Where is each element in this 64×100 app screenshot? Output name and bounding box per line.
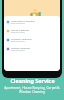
- staticText: from $18/hour: [11, 31, 25, 34]
- staticText: House Keeping: [11, 28, 29, 31]
- button[interactable]: Carpet Cleaning: [4, 44, 60, 53]
- staticText: Cleaning Service: [10, 77, 55, 84]
- button[interactable]: Apartment Cleaning: [4, 17, 60, 26]
- staticText: from $22/hour: [11, 49, 25, 52]
- staticText: Window Cleaning: [11, 37, 32, 40]
- staticText: Carpet Cleaning: [11, 46, 30, 49]
- staticText: Apartment Cleaning: [11, 19, 35, 22]
- staticText: from $30/hour: [11, 40, 25, 43]
- button[interactable]: Window Cleaning: [4, 35, 60, 44]
- staticText: Apartment, House Keeping, Carpet & Windo…: [3, 86, 61, 94]
- button[interactable]: House Keeping: [4, 26, 60, 35]
- staticText: from $25/hour: [11, 22, 25, 25]
